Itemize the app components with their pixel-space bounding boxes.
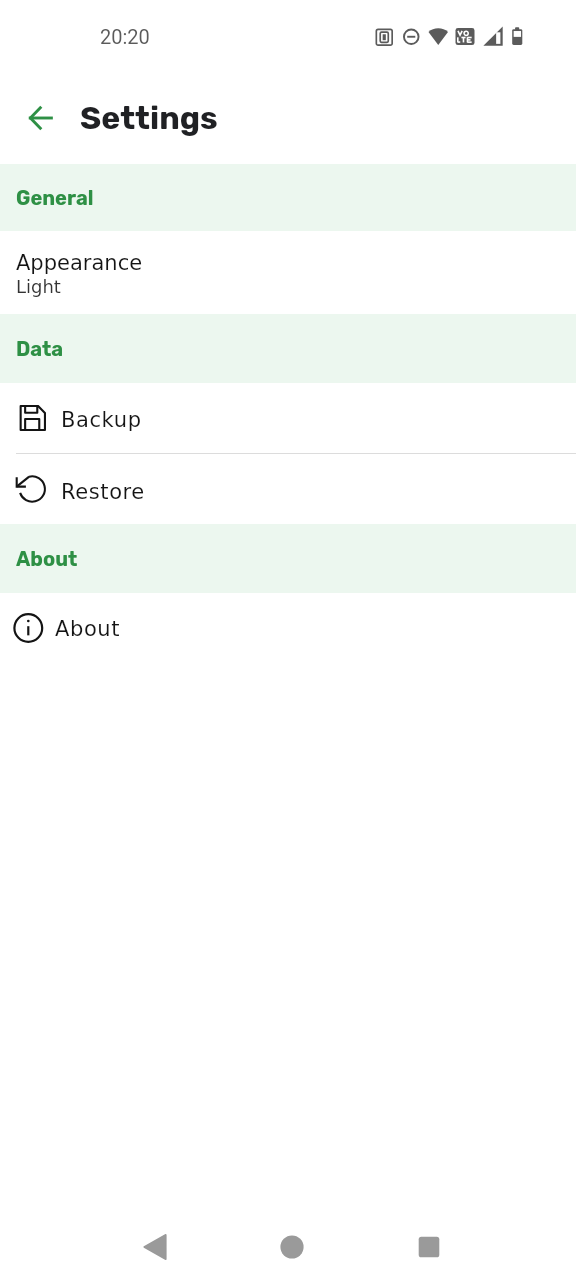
button: Data [0, 314, 576, 383]
staticText: Light [16, 276, 61, 297]
button[interactable]: Back [18, 95, 64, 141]
button[interactable]: Back [124, 1219, 186, 1275]
button: General [0, 164, 576, 231]
button[interactable]: About [0, 593, 576, 663]
staticText: General [16, 186, 94, 210]
staticText: About [16, 547, 78, 571]
staticText: About [55, 617, 121, 641]
button: About [0, 524, 576, 593]
button[interactable]: Backup [0, 383, 576, 453]
staticText: 20:20 [100, 25, 150, 48]
button[interactable]: Recent apps [398, 1219, 460, 1275]
staticText: Data [16, 337, 64, 361]
button[interactable]: Home [261, 1219, 323, 1275]
staticText: Restore [61, 480, 145, 504]
staticText: Appearance [16, 251, 143, 275]
staticText: Settings [80, 99, 218, 137]
staticText: Backup [61, 408, 142, 432]
button[interactable]: Appearance [0, 231, 576, 314]
button[interactable]: Restore [0, 454, 576, 524]
